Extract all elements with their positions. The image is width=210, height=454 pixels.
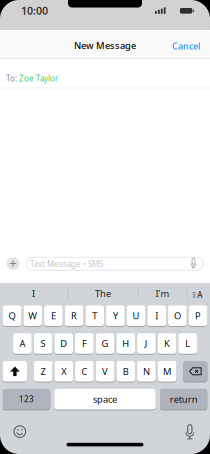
button[interactable]: space bbox=[54, 389, 156, 409]
button[interactable]: The bbox=[70, 284, 136, 303]
staticText: L bbox=[185, 337, 190, 350]
button[interactable]: S bbox=[34, 333, 52, 354]
staticText: Z bbox=[41, 365, 46, 377]
staticText: T bbox=[92, 309, 97, 322]
button[interactable]: V bbox=[96, 361, 114, 382]
staticText: S bbox=[41, 337, 46, 350]
button[interactable]: I bbox=[147, 305, 166, 326]
button[interactable]: O bbox=[168, 305, 187, 326]
staticText: G bbox=[101, 337, 108, 350]
staticText: K bbox=[164, 337, 170, 350]
staticText: R bbox=[71, 309, 77, 322]
staticText: W bbox=[28, 309, 37, 322]
button[interactable] bbox=[6, 257, 19, 270]
staticText: D bbox=[60, 337, 67, 350]
staticText: B bbox=[123, 365, 129, 377]
staticText: H bbox=[122, 337, 129, 350]
button[interactable]: Cancel bbox=[172, 40, 200, 52]
staticText: X bbox=[61, 365, 66, 377]
staticText: Y bbox=[113, 309, 118, 322]
button[interactable]: E bbox=[44, 305, 63, 326]
staticText: C bbox=[81, 365, 87, 377]
staticText: P bbox=[195, 309, 201, 322]
staticText: 10:00 bbox=[21, 3, 48, 18]
staticText: Zoe Taylor bbox=[19, 73, 58, 84]
button[interactable]: T bbox=[85, 305, 104, 326]
button[interactable]: C bbox=[75, 361, 94, 382]
button[interactable]: return bbox=[160, 389, 207, 409]
staticText: O bbox=[174, 309, 181, 322]
staticText: A bbox=[19, 337, 25, 350]
staticText: I'm bbox=[155, 287, 169, 300]
staticText: Cancel bbox=[172, 40, 200, 52]
staticText: To: bbox=[6, 73, 17, 84]
button[interactable]: D bbox=[54, 333, 73, 354]
staticText: N bbox=[143, 365, 150, 377]
button[interactable]: U bbox=[127, 305, 145, 326]
staticText: 123 bbox=[19, 394, 34, 404]
staticText: space bbox=[93, 393, 117, 405]
button[interactable]: F bbox=[75, 333, 94, 354]
staticText: U bbox=[133, 309, 140, 322]
staticText: E bbox=[51, 309, 56, 322]
staticText: J bbox=[145, 337, 148, 350]
staticText: F bbox=[82, 337, 87, 350]
button[interactable]: L bbox=[178, 333, 197, 354]
button[interactable]: Y bbox=[106, 305, 125, 326]
button[interactable] bbox=[3, 361, 27, 382]
staticText: M bbox=[163, 365, 171, 377]
button[interactable]: M bbox=[158, 361, 176, 382]
button[interactable] bbox=[13, 425, 26, 438]
staticText: I bbox=[155, 309, 158, 322]
button[interactable]: I bbox=[0, 284, 66, 303]
staticText: return bbox=[170, 393, 198, 405]
button[interactable] bbox=[26, 257, 203, 270]
staticText: V bbox=[102, 365, 108, 377]
staticText: A bbox=[197, 290, 202, 300]
button[interactable] bbox=[181, 422, 199, 442]
staticText: The bbox=[95, 287, 111, 300]
button[interactable]: J bbox=[137, 333, 156, 354]
button[interactable]: B bbox=[116, 361, 135, 382]
staticText: New Message bbox=[74, 39, 136, 52]
button[interactable]: P bbox=[189, 305, 207, 326]
button[interactable]: I'm bbox=[140, 284, 185, 303]
staticText: Text Message • SMS bbox=[30, 258, 103, 269]
button[interactable]: G bbox=[96, 333, 114, 354]
button[interactable]: 123 bbox=[3, 389, 50, 409]
staticText: I bbox=[32, 287, 35, 300]
button[interactable]: W bbox=[23, 305, 42, 326]
button[interactable]: X bbox=[54, 361, 73, 382]
button[interactable]: K bbox=[158, 333, 176, 354]
button[interactable]: Z bbox=[34, 361, 52, 382]
staticText: Q bbox=[9, 309, 16, 322]
button[interactable]: A bbox=[13, 333, 32, 354]
button[interactable]: N bbox=[137, 361, 156, 382]
button[interactable] bbox=[183, 361, 207, 382]
button[interactable]: R bbox=[65, 305, 83, 326]
button[interactable]: Q bbox=[3, 305, 21, 326]
button[interactable]: H bbox=[116, 333, 135, 354]
